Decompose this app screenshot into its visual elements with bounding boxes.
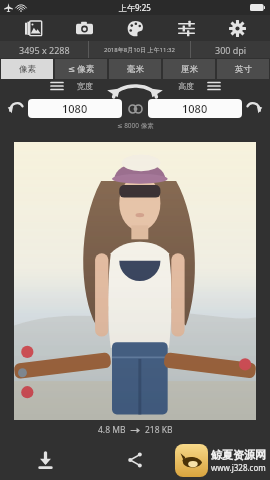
staticText: 1080 <box>182 101 208 116</box>
staticText: 2018年8月10日 上午11:32 <box>104 46 175 54</box>
button[interactable]: 毫米 <box>109 59 161 79</box>
button[interactable]: ≤ 像素 <box>55 59 107 79</box>
staticText: 高度 <box>178 81 194 91</box>
button[interactable]: Settings <box>219 15 255 41</box>
staticText: 1080 <box>62 101 88 116</box>
button[interactable]: Save <box>0 440 90 480</box>
staticText: 300 dpi <box>215 44 247 56</box>
button[interactable]: Adjust <box>168 15 204 41</box>
staticText: 鲸夏资源网 <box>211 448 266 462</box>
button[interactable]: 1080 <box>148 99 242 118</box>
staticText: ≤ 8000 像素 <box>117 121 154 130</box>
button[interactable]: Redo <box>239 91 269 121</box>
button[interactable]: Share <box>90 440 180 480</box>
staticText: ≤ 像素 <box>68 63 95 75</box>
staticText: www.j328.com <box>211 462 266 473</box>
button[interactable]: 1080 <box>28 99 122 118</box>
staticText: 厘米 <box>181 64 198 75</box>
staticText: 3495 x 2288 <box>19 44 70 56</box>
button[interactable]: 厘米 <box>163 59 215 79</box>
button[interactable]: Palette <box>117 15 153 41</box>
staticText: 毫米 <box>127 64 144 75</box>
staticText: 4.8 MB <box>98 424 126 436</box>
staticText: 像素 <box>19 64 36 75</box>
button[interactable]: Link dimensions <box>122 100 148 118</box>
button[interactable]: Undo <box>1 91 31 121</box>
button[interactable]: Camera <box>66 15 102 41</box>
staticText: 英寸 <box>235 64 252 75</box>
button[interactable]: 像素 <box>1 59 53 79</box>
staticText: 上午9:25 <box>119 2 151 13</box>
button[interactable]: Gallery <box>15 15 51 41</box>
staticText: 218 KB <box>145 424 173 436</box>
button[interactable]: 英寸 <box>217 59 269 79</box>
staticText: 宽度 <box>77 81 93 91</box>
